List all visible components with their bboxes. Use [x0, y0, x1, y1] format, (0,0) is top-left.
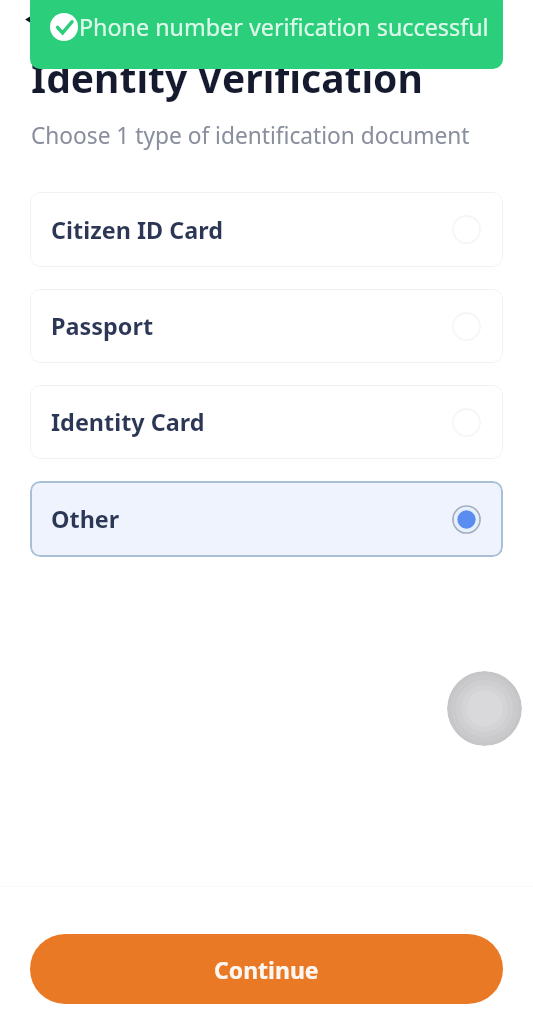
button[interactable]: Phone number verification successful — [30, 0, 503, 69]
button[interactable]: Citizen ID Card — [30, 192, 503, 267]
staticText: Continue — [214, 954, 319, 985]
staticText: Other — [51, 503, 120, 535]
staticText: Passport — [51, 310, 154, 342]
button[interactable]: Other — [30, 481, 503, 557]
staticText: Choose 1 type of identification document — [31, 120, 470, 151]
button[interactable]: Accessibility menu — [447, 671, 522, 746]
button[interactable]: Back — [13, 5, 41, 33]
staticText: Phone number verification successful — [79, 11, 489, 43]
staticText: Identity Card — [51, 406, 205, 438]
button[interactable]: Continue — [30, 934, 503, 1004]
button[interactable]: Passport — [30, 289, 503, 363]
button[interactable]: Identity Card — [30, 385, 503, 459]
staticText: Citizen ID Card — [51, 214, 224, 246]
staticText: Identity Verification — [31, 51, 423, 104]
